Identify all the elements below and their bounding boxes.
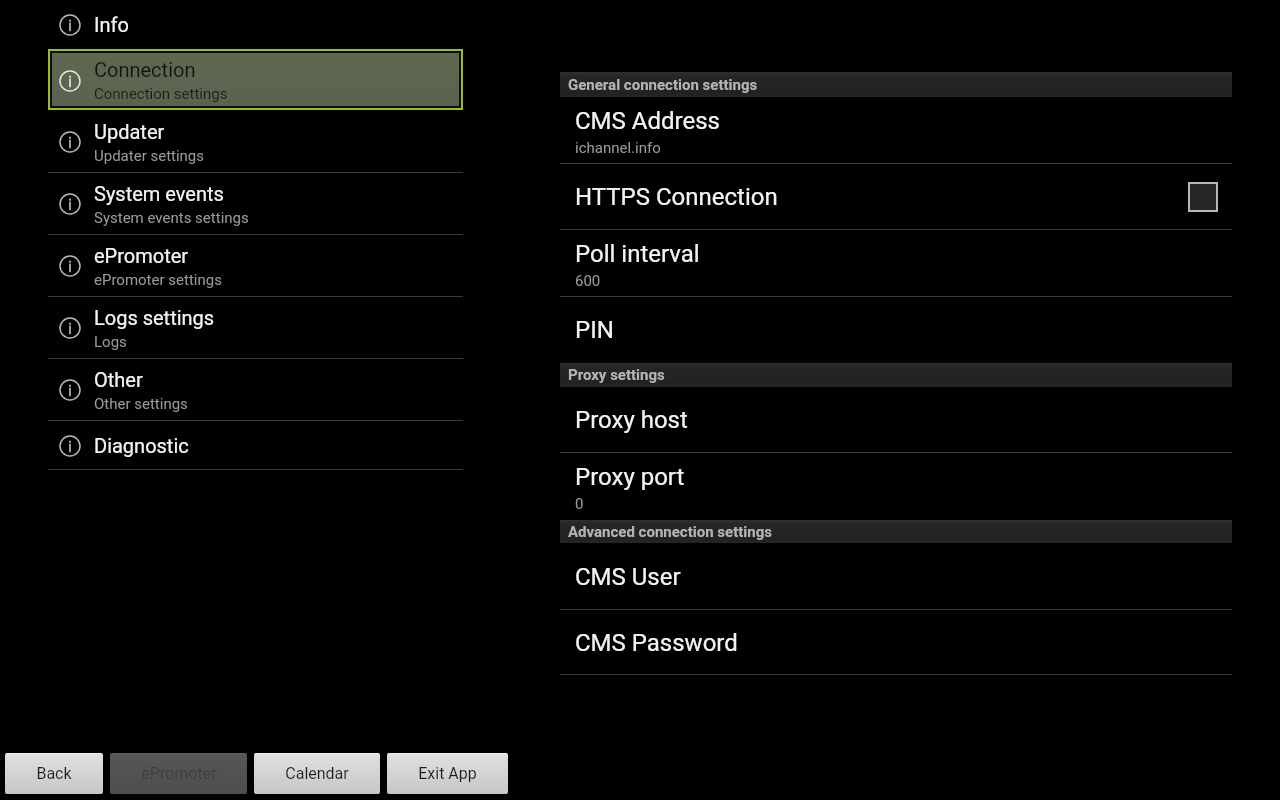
button[interactable]: Poll interval xyxy=(560,230,1232,297)
staticText: Proxy settings xyxy=(568,366,665,384)
button[interactable]: Exit App xyxy=(387,753,508,794)
button[interactable]: System events xyxy=(48,173,463,235)
staticText: ePromoter xyxy=(141,764,217,783)
button[interactable]: Logs settings xyxy=(48,297,463,359)
button[interactable]: ePromoter xyxy=(48,235,463,297)
button[interactable]: ePromoter xyxy=(110,753,247,794)
button[interactable]: Calendar xyxy=(254,753,380,794)
button[interactable]: CMS Password xyxy=(560,610,1232,675)
staticText: System events xyxy=(94,182,224,205)
staticText: Other xyxy=(94,368,143,391)
staticText: HTTPS Connection xyxy=(575,183,778,211)
staticText: Connection settings xyxy=(94,85,228,103)
staticText: ePromoter xyxy=(94,244,189,267)
button[interactable]: Diagnostic xyxy=(48,421,463,470)
staticText: Advanced connection settings xyxy=(568,523,772,541)
button[interactable]: CMS User xyxy=(560,543,1232,610)
staticText: 600 xyxy=(575,272,601,290)
staticText: Proxy port xyxy=(575,463,685,491)
button[interactable]: CMS Address xyxy=(560,97,1232,164)
staticText: ePromoter settings xyxy=(94,271,222,289)
staticText: Proxy host xyxy=(575,406,688,434)
button[interactable]: Connection xyxy=(52,53,459,106)
staticText: 0 xyxy=(575,495,584,513)
button[interactable]: PIN xyxy=(560,297,1232,363)
staticText: Info xyxy=(94,13,129,36)
staticText: Updater settings xyxy=(94,147,205,165)
staticText: Connection xyxy=(94,58,196,81)
staticText: CMS Address xyxy=(575,107,720,135)
staticText: PIN xyxy=(575,316,614,344)
staticText: Back xyxy=(36,764,72,783)
staticText: System events settings xyxy=(94,209,249,227)
button[interactable]: Proxy host xyxy=(560,387,1232,453)
button[interactable]: Back xyxy=(5,753,103,794)
button[interactable]: Info xyxy=(48,0,463,49)
staticText: CMS Password xyxy=(575,629,738,657)
staticText: ichannel.info xyxy=(575,139,661,157)
staticText: Logs settings xyxy=(94,306,215,329)
staticText: General connection settings xyxy=(568,76,758,94)
button[interactable]: Updater xyxy=(48,111,463,173)
staticText: Other settings xyxy=(94,395,188,413)
staticText: Exit App xyxy=(418,764,477,783)
button[interactable]: Other xyxy=(48,359,463,421)
button[interactable]: HTTPS Connection xyxy=(560,164,1232,230)
staticText: CMS User xyxy=(575,563,681,591)
staticText: Diagnostic xyxy=(94,434,189,457)
staticText: Logs xyxy=(94,333,127,351)
staticText: Updater xyxy=(94,120,165,143)
staticText: Poll interval xyxy=(575,240,700,268)
staticText: Calendar xyxy=(285,764,349,783)
button[interactable]: Proxy port xyxy=(560,453,1232,520)
